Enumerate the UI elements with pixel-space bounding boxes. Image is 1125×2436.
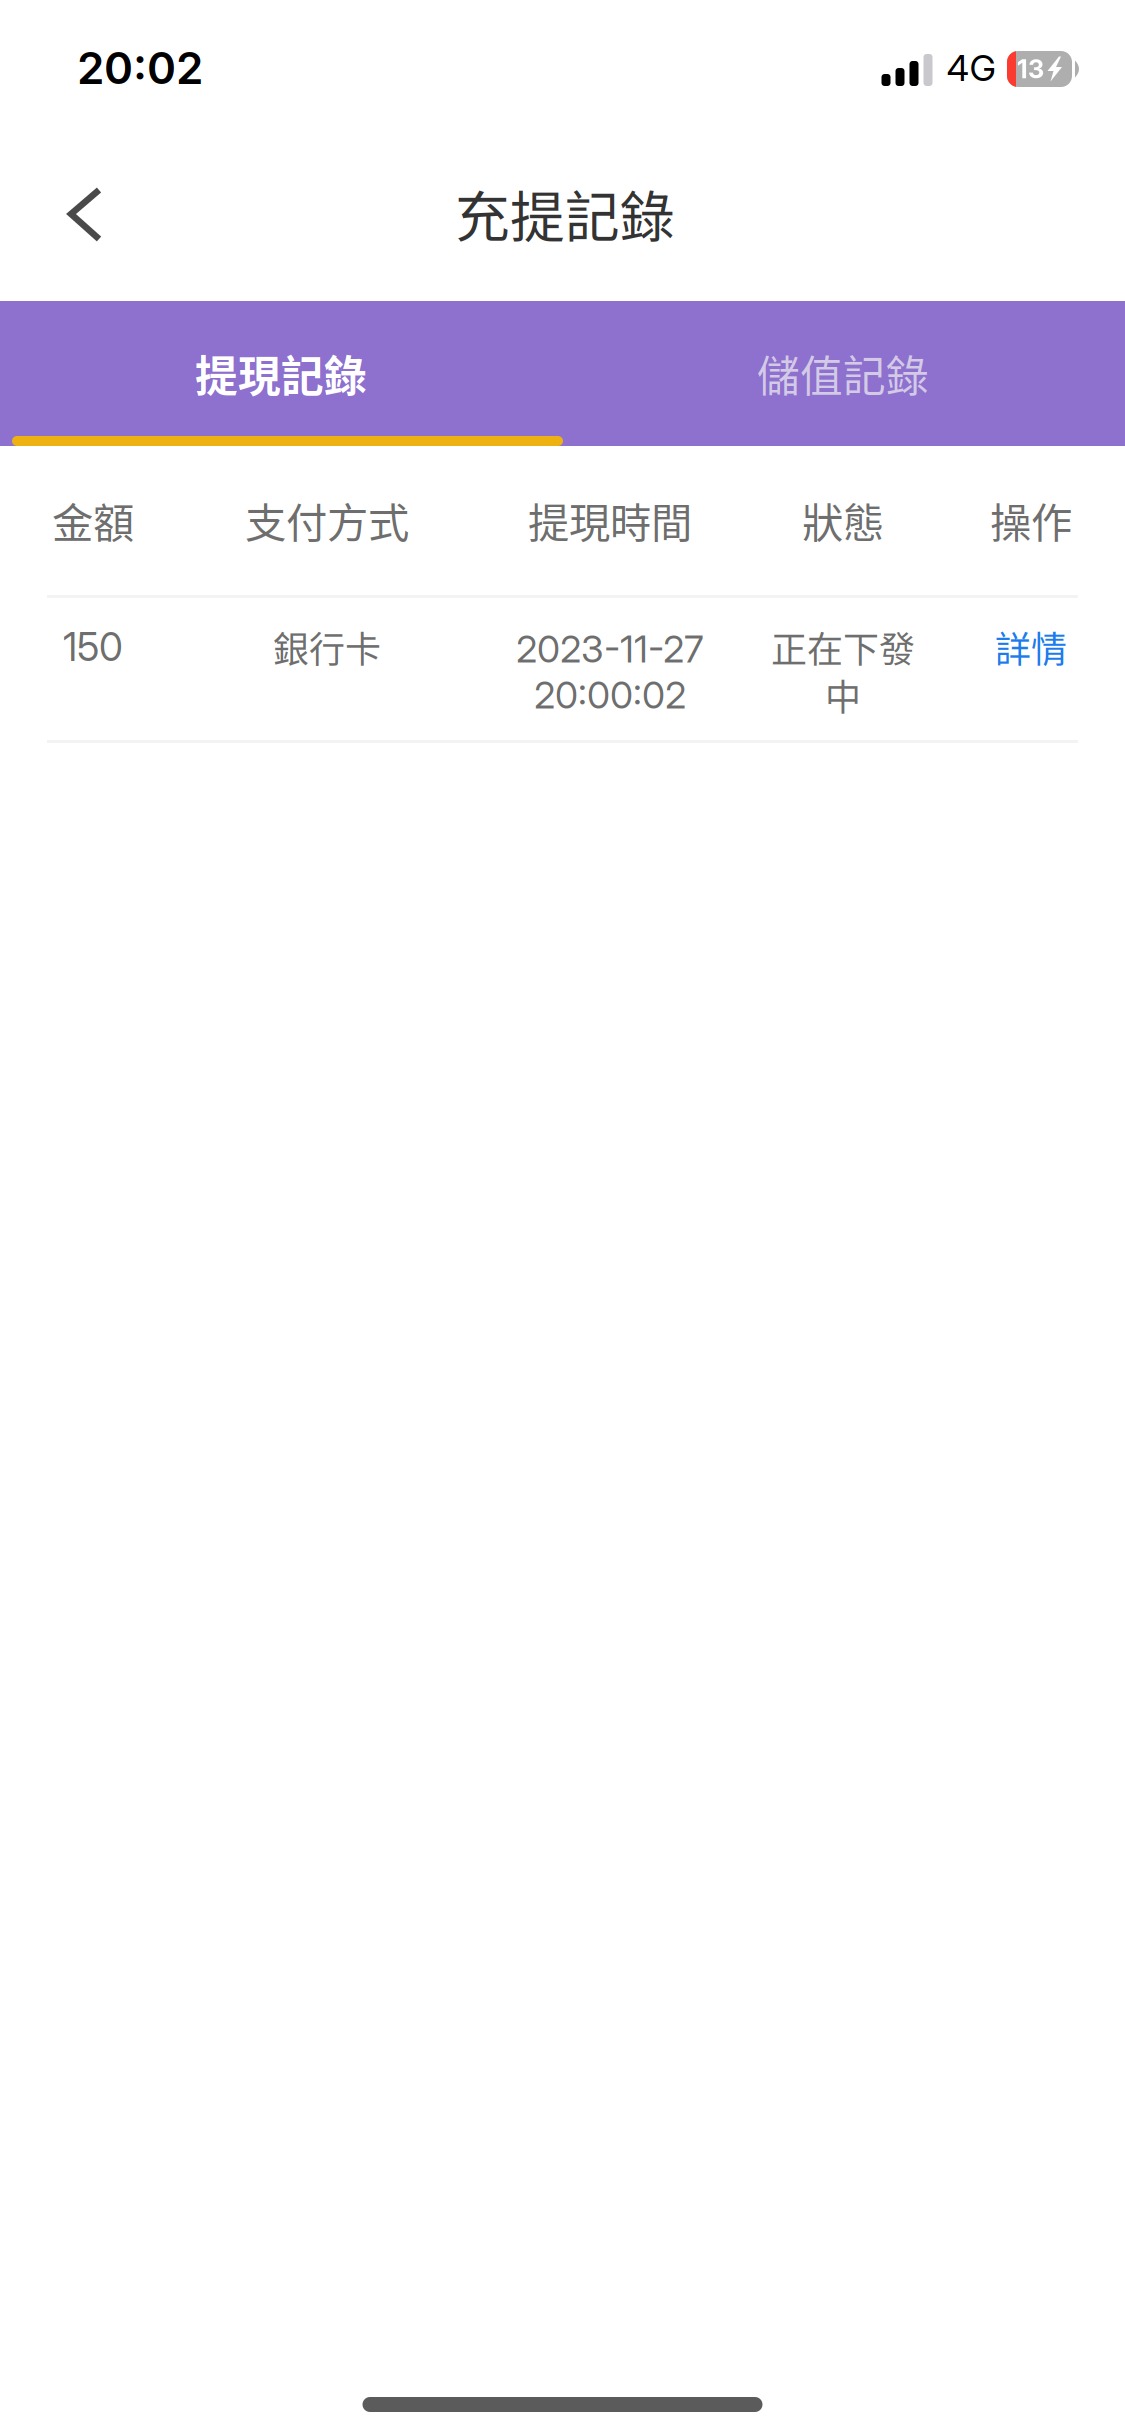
staticText: 提現記錄 [195,343,367,404]
staticText: 充提記錄 [455,173,675,253]
staticText: 2023-11-27 [516,626,704,672]
staticText: 提現時間 [528,490,692,550]
staticText: 中 [825,669,861,721]
button[interactable]: 儲值記錄 [562,301,1124,446]
staticText: 儲值記錄 [757,343,929,404]
staticText: 金額 [52,490,134,550]
staticText: 13 [1017,54,1044,84]
button[interactable]: 詳情 [956,599,1106,695]
button[interactable]: Back [30,159,140,269]
staticText: 銀行卡 [273,621,381,673]
staticText: 150 [63,624,123,670]
staticText: 操作 [990,490,1072,550]
staticText: 正在下發 [771,621,915,673]
staticText: 20:02 [77,41,203,95]
staticText: 詳情 [995,621,1067,673]
staticText: 支付方式 [245,490,409,550]
staticText: 狀態 [802,490,884,550]
button[interactable]: 提現記錄 [0,301,562,446]
staticText: 4G [946,46,995,90]
staticText: 20:00:02 [534,672,686,718]
